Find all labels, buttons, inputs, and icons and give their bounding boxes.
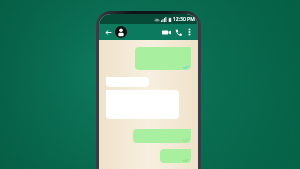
button[interactable]	[160, 149, 191, 163]
button[interactable]: Voice call	[172, 26, 184, 38]
button[interactable]: Contact profile	[115, 26, 127, 38]
button[interactable]	[106, 77, 149, 87]
staticText: 12:30 PM	[173, 16, 195, 23]
button[interactable]: Video call	[160, 26, 172, 38]
button[interactable]: More options	[184, 27, 194, 37]
button[interactable]	[133, 129, 191, 143]
button[interactable]: Back	[103, 27, 114, 38]
button[interactable]	[135, 47, 191, 70]
